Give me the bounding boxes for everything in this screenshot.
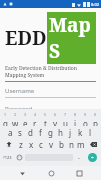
staticText: p bbox=[93, 118, 98, 126]
button[interactable]: s bbox=[15, 126, 25, 138]
staticText: EDD bbox=[5, 25, 47, 51]
staticText: g bbox=[48, 127, 53, 138]
staticText: b bbox=[59, 139, 64, 150]
button[interactable]: . bbox=[74, 150, 84, 164]
staticText: j bbox=[69, 127, 72, 138]
button[interactable]: x bbox=[26, 138, 36, 150]
button[interactable]: Password bbox=[5, 105, 96, 109]
staticText: 2 bbox=[14, 112, 17, 117]
button[interactable]: 9 bbox=[80, 112, 90, 126]
button[interactable]: 1 bbox=[1, 112, 10, 126]
button[interactable]: b bbox=[56, 138, 66, 150]
staticText: k bbox=[78, 127, 83, 138]
staticText: t bbox=[44, 118, 47, 126]
button[interactable]: Home bbox=[44, 166, 58, 180]
staticText: a bbox=[8, 127, 13, 138]
staticText: Early Detection & Distribution Mapping S… bbox=[5, 65, 96, 79]
button[interactable]: h bbox=[55, 126, 65, 138]
button[interactable]: k bbox=[75, 126, 85, 138]
staticText: m bbox=[77, 139, 85, 150]
button[interactable]: c bbox=[36, 138, 46, 150]
button[interactable]: 5 bbox=[40, 112, 50, 126]
staticText: 0 bbox=[94, 112, 97, 117]
button[interactable]: Backspace bbox=[86, 138, 100, 150]
button[interactable]: 4 bbox=[30, 112, 40, 126]
staticText: o bbox=[83, 118, 88, 126]
staticText: 3 bbox=[24, 112, 27, 117]
staticText: c bbox=[39, 139, 43, 150]
button[interactable]: n bbox=[66, 138, 76, 150]
button[interactable]: 7 bbox=[60, 112, 70, 126]
button[interactable]: Enter bbox=[84, 150, 100, 164]
staticText: ?123 bbox=[3, 155, 12, 160]
button[interactable]: 8 bbox=[70, 112, 80, 126]
button[interactable]: f bbox=[35, 126, 45, 138]
staticText: Password bbox=[5, 105, 33, 109]
button[interactable]: l bbox=[85, 126, 95, 138]
staticText: u bbox=[63, 118, 68, 126]
staticText: f bbox=[39, 127, 42, 138]
staticText: z bbox=[19, 139, 23, 150]
staticText: Username bbox=[5, 87, 35, 95]
button[interactable]: 2 bbox=[10, 112, 20, 126]
staticText: q bbox=[3, 118, 8, 126]
staticText: n bbox=[69, 139, 74, 150]
button[interactable]: g bbox=[45, 126, 55, 138]
staticText: 6 bbox=[54, 112, 57, 117]
button[interactable]: v bbox=[46, 138, 56, 150]
button[interactable]: ?123 bbox=[1, 150, 14, 164]
button[interactable]: z bbox=[16, 138, 26, 150]
button[interactable]: 0 bbox=[90, 112, 100, 126]
button[interactable]: 6 bbox=[50, 112, 60, 126]
staticText: . bbox=[78, 152, 80, 162]
staticText: 1 bbox=[4, 112, 7, 117]
button[interactable]: Shift bbox=[1, 138, 16, 150]
button[interactable]: a bbox=[6, 126, 15, 138]
button[interactable]: Back bbox=[15, 166, 29, 180]
staticText: w bbox=[12, 118, 19, 126]
staticText: s bbox=[18, 127, 22, 138]
button[interactable]: 3 bbox=[20, 112, 30, 126]
staticText: 4 bbox=[34, 112, 37, 117]
button[interactable]: d bbox=[25, 126, 35, 138]
staticText: e bbox=[23, 118, 28, 126]
staticText: r bbox=[33, 118, 37, 126]
staticText: 5 bbox=[44, 112, 47, 117]
staticText: l bbox=[89, 127, 92, 138]
staticText: d bbox=[28, 127, 33, 138]
staticText: i bbox=[74, 118, 77, 126]
button[interactable]: Username bbox=[5, 87, 96, 98]
staticText: 9 bbox=[84, 112, 87, 117]
staticText: 8 bbox=[74, 112, 77, 117]
staticText: 7 bbox=[64, 112, 67, 117]
staticText: h bbox=[58, 127, 63, 138]
button[interactable]: m bbox=[76, 138, 86, 150]
staticText: y bbox=[53, 118, 58, 126]
button[interactable]: Emoji bbox=[14, 150, 24, 164]
staticText: 8:02 bbox=[91, 2, 99, 7]
staticText: x bbox=[29, 139, 34, 150]
staticText: MapS bbox=[49, 12, 94, 64]
button[interactable]: Recent apps bbox=[72, 166, 86, 180]
staticText: v bbox=[49, 139, 54, 150]
button[interactable]: j bbox=[65, 126, 75, 138]
